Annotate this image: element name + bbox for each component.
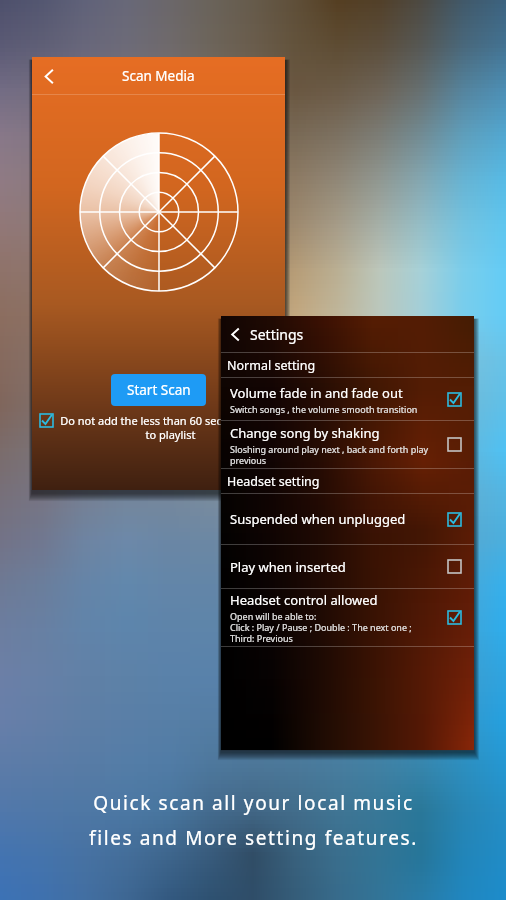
button[interactable]: Headset control allowed [221,589,474,646]
staticText: Volume fade in and fade out [230,384,403,402]
button[interactable]: Play when inserted [221,545,474,588]
button[interactable]: Do not add the less than 60 seconds song… [32,413,285,442]
staticText: Open will be able to: Click : Play / Pau… [230,610,412,644]
staticText: Do not add the less than 60 seconds song… [60,413,281,442]
button[interactable]: Settings [221,316,474,352]
staticText: Headset control allowed [230,591,378,609]
staticText: Headset setting [227,473,320,490]
button[interactable]: Start Scan [111,374,206,406]
staticText: Settings [250,325,304,344]
button[interactable]: Back [32,59,66,93]
staticText: Quick scan all your local music files an… [89,790,418,850]
staticText: Normal setting [227,357,316,374]
staticText: Change song by shaking [230,424,380,442]
staticText: Sloshing around play next , back and for… [230,443,429,466]
staticText: Start Scan [127,381,191,399]
staticText: Scan Media [122,67,195,85]
button[interactable]: Change song by shaking [221,421,474,468]
staticText: Suspended when unplugged [230,510,406,528]
staticText: Play when inserted [230,558,346,576]
button[interactable]: Volume fade in and fade out [221,378,474,420]
staticText: Switch songs , the volume smooth transit… [230,403,418,415]
button[interactable]: Suspended when unplugged [221,494,474,544]
